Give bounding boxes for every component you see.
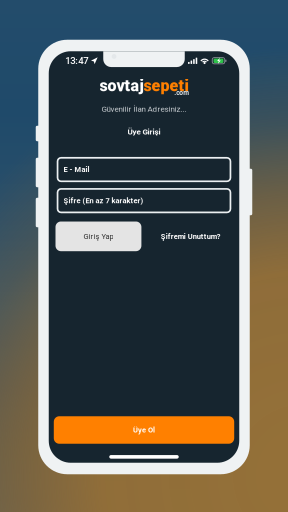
staticText: .com	[174, 89, 189, 96]
button[interactable]: Giriş Yap	[55, 221, 141, 251]
button[interactable]: Şifremi Unuttum?	[161, 232, 221, 241]
staticText: sepeti	[143, 76, 188, 95]
staticText: Giriş Yap	[83, 232, 113, 241]
staticText: Üye Ol	[133, 426, 155, 434]
button[interactable]: Şifre (En az 7 karakter)	[57, 189, 230, 212]
staticText: Üye Girişi	[127, 127, 160, 136]
staticText: Güvenilir İlan Adresiniz...	[101, 104, 186, 114]
button[interactable]: Üye Ol	[54, 416, 234, 444]
staticText: Şifre (En az 7 karakter)	[63, 196, 143, 205]
staticText: E - Mail	[63, 165, 89, 174]
staticText: sovtaj	[99, 76, 143, 95]
staticText: 13:47	[65, 55, 88, 66]
staticText: Şifremi Unuttum?	[161, 232, 221, 241]
button[interactable]: E - Mail	[57, 158, 230, 181]
